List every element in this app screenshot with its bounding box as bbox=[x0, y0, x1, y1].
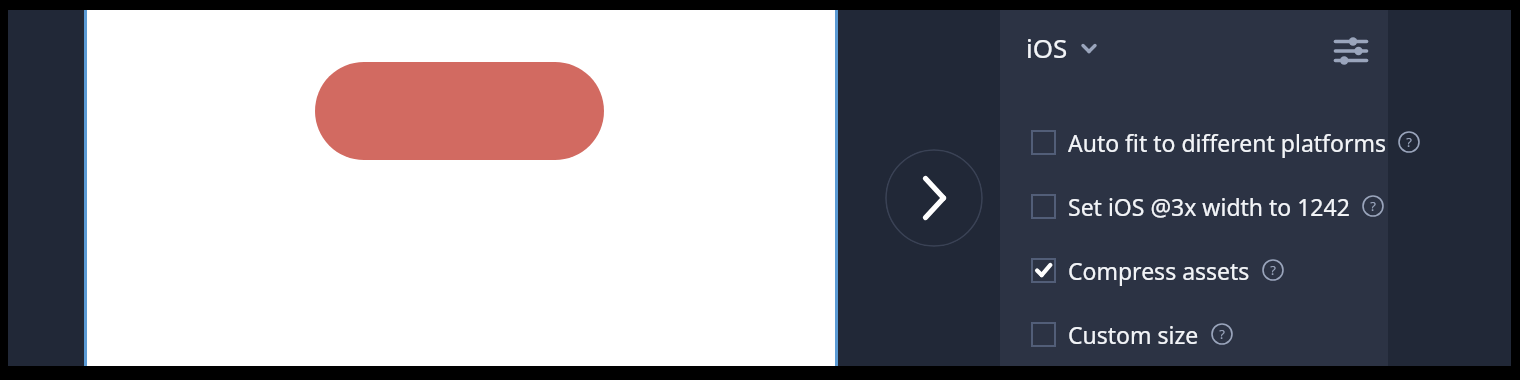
staticText: Auto fit to different platforms bbox=[1068, 127, 1386, 158]
staticText: ? bbox=[1406, 133, 1412, 151]
button[interactable]: Compress assets bbox=[1032, 238, 1284, 302]
button[interactable]: Settings bbox=[1328, 28, 1374, 74]
button[interactable]: Auto fit to different platforms bbox=[1032, 110, 1420, 174]
button[interactable]: Custom size bbox=[1032, 302, 1233, 366]
staticText: Custom size bbox=[1068, 319, 1199, 350]
button[interactable]: Next bbox=[885, 149, 983, 247]
button[interactable]: iOS bbox=[1026, 30, 1098, 65]
staticText: ? bbox=[1270, 261, 1276, 279]
staticText: Set iOS @3x width to 1242 bbox=[1068, 191, 1350, 222]
staticText: ? bbox=[1219, 325, 1225, 343]
staticText: ? bbox=[1370, 197, 1376, 215]
button[interactable]: Set iOS @3x width to 1242 bbox=[1032, 174, 1384, 238]
button[interactable] bbox=[315, 62, 604, 160]
staticText: iOS bbox=[1026, 30, 1068, 65]
staticText: Compress assets bbox=[1068, 255, 1250, 286]
